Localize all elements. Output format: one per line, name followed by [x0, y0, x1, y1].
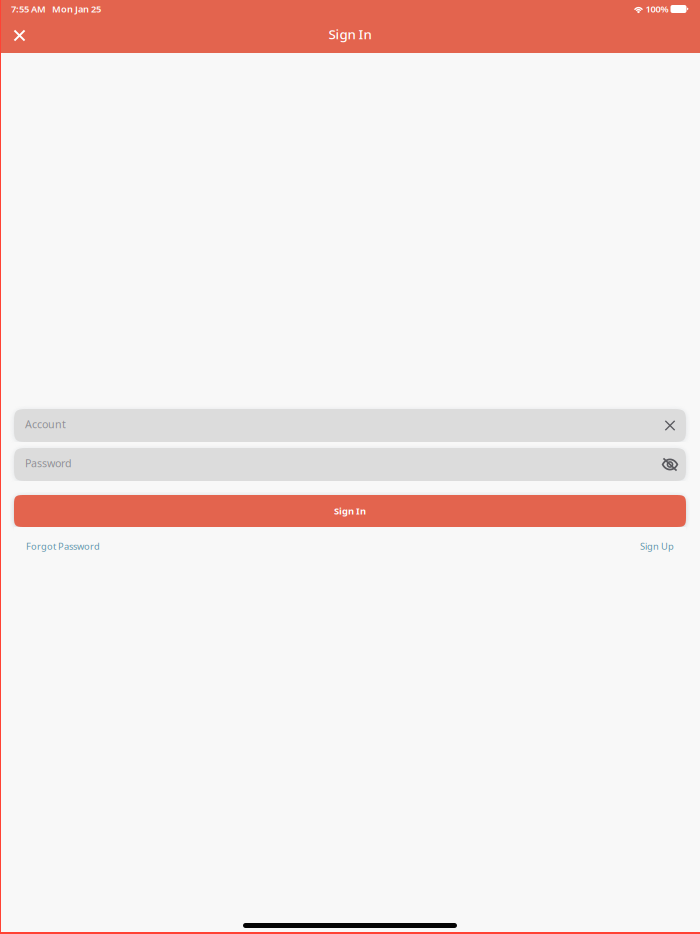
button[interactable]: Sign In: [14, 495, 686, 527]
button[interactable]: Forgot Password: [26, 540, 100, 552]
staticText: Forgot Password: [26, 540, 100, 552]
button[interactable]: Show password: [657, 448, 683, 481]
staticText: 7:55 AM: [11, 3, 46, 15]
staticText: Mon Jan 25: [46, 3, 101, 15]
staticText: Password: [25, 456, 72, 470]
staticText: Sign Up: [640, 540, 674, 552]
button[interactable]: Clear account: [657, 409, 683, 442]
staticText: Sign In: [328, 25, 371, 43]
staticText: Account: [25, 417, 66, 431]
staticText: Sign In: [334, 505, 366, 517]
button[interactable]: Close: [0, 18, 39, 53]
button[interactable]: Sign Up: [640, 540, 674, 552]
staticText: 100%: [643, 3, 670, 15]
